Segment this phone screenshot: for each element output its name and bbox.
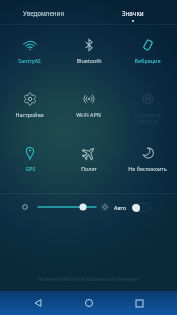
staticText: Уведомления: [23, 9, 65, 17]
button[interactable]: Значки: [88, 0, 177, 24]
staticText: Передача данных: [135, 111, 161, 125]
staticText: Включите Wi-Fi или мобильный Интернет: [0, 276, 177, 283]
button[interactable]: Bluetooth: [59, 25, 118, 79]
staticText: Полет: [81, 165, 97, 172]
button[interactable]: Не беспокоить: [118, 133, 177, 187]
staticText: Bluetooth: [76, 57, 102, 64]
button[interactable]: Недавние: [127, 291, 151, 315]
button[interactable]: Полет: [59, 133, 118, 187]
button[interactable]: Уведомления: [0, 0, 88, 24]
button[interactable]: Яркость: [18, 194, 104, 220]
button[interactable]: Настройки: [0, 79, 59, 133]
button[interactable]: Домой: [77, 291, 101, 315]
staticText: Значки: [122, 9, 144, 17]
staticText: Не беспокоить: [128, 165, 167, 172]
staticText: Wi-Fi APN: [76, 111, 101, 118]
button[interactable]: SantryAS: [0, 25, 59, 79]
staticText: Настройки: [15, 111, 44, 118]
staticText: Авто: [114, 204, 127, 211]
button[interactable]: Вибрация: [118, 25, 177, 79]
button[interactable]: Передача данных: [118, 79, 177, 133]
staticText: SantryAS: [18, 57, 41, 64]
button[interactable]: Wi-Fi APN: [59, 79, 118, 133]
button[interactable]: Авто яркость: [132, 203, 151, 212]
staticText: GPS: [25, 165, 36, 172]
staticText: Вибрация: [134, 57, 161, 64]
button[interactable]: GPS: [0, 133, 59, 187]
button[interactable]: Назад: [26, 291, 50, 315]
